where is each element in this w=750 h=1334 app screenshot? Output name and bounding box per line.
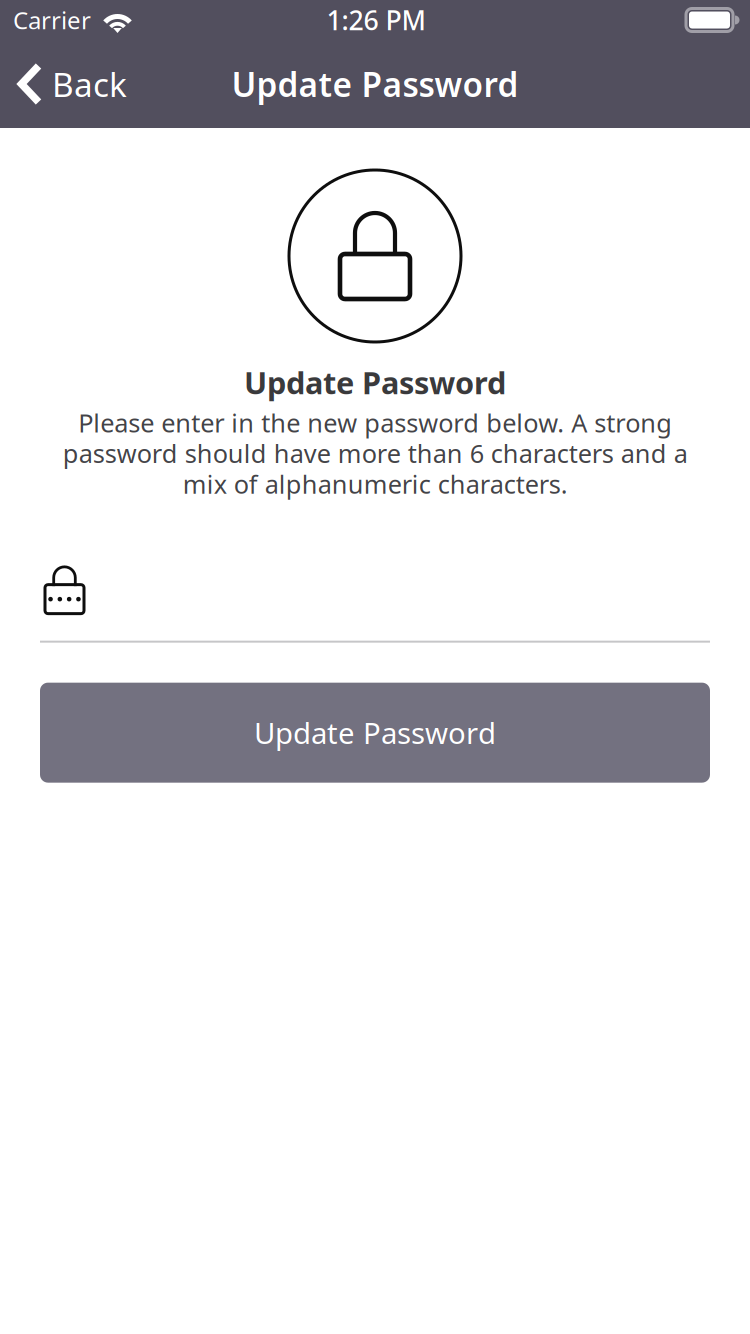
staticText: Please enter in the new password below. … bbox=[62, 406, 687, 501]
button[interactable]: Update Password bbox=[40, 683, 710, 783]
staticText: Carrier bbox=[13, 4, 91, 36]
staticText: Update Password bbox=[244, 362, 506, 403]
staticText: Back bbox=[52, 62, 127, 106]
button[interactable]: Back bbox=[0, 40, 175, 128]
button[interactable]: New password bbox=[40, 565, 710, 643]
staticText: Update Password bbox=[231, 62, 518, 106]
staticText: Update Password bbox=[254, 713, 496, 752]
staticText: 1:26 PM bbox=[326, 2, 425, 38]
